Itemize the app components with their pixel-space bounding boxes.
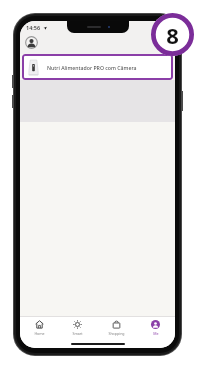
staticText: 8	[166, 20, 179, 50]
staticText: 14:56	[26, 24, 41, 31]
button[interactable]: Nutri Alimentador PRO com Câmera	[22, 54, 173, 80]
button[interactable]: Shopping	[97, 317, 136, 339]
other: Shopping	[112, 320, 121, 329]
staticText: Shopping	[108, 331, 125, 336]
button[interactable]: 8	[151, 13, 194, 56]
button[interactable]: Me	[136, 317, 175, 339]
button[interactable]: Home	[20, 317, 58, 339]
other: Home	[35, 320, 44, 329]
other: Smart	[73, 320, 82, 329]
button[interactable]: Profile	[25, 36, 38, 49]
button[interactable]: Smart	[58, 317, 97, 339]
staticText: Nutri Alimentador PRO com Câmera	[47, 64, 137, 71]
staticText: Home	[34, 331, 45, 336]
staticText: Me	[153, 331, 159, 336]
staticText: Smart	[72, 331, 83, 336]
